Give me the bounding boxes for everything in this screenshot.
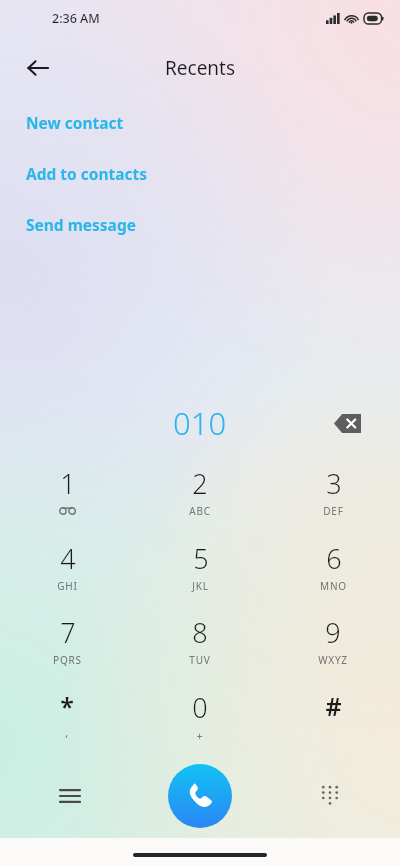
staticText: + [196,728,204,743]
staticText: 6 [326,540,342,577]
staticText: Add to contacts [26,163,148,184]
staticText: MNO [320,579,347,593]
staticText: GHI [57,579,78,593]
staticText: * [60,689,74,723]
staticText: WXYZ [318,653,348,667]
button[interactable]: # [285,689,381,751]
button[interactable]: 0 [152,689,248,751]
staticText: New contact [26,112,124,133]
staticText: 010 [173,402,227,444]
button[interactable]: 8 [152,614,248,676]
staticText: TUV [189,653,211,667]
staticText: , [65,725,69,740]
staticText: DEF [323,504,344,518]
staticText: 1 [60,465,76,502]
button[interactable]: * [19,689,115,751]
button[interactable]: Add to contacts [26,161,148,186]
button[interactable]: New contact [26,110,124,135]
button[interactable]: Send message [26,212,136,237]
staticText: JKL [192,579,209,593]
button[interactable]: 2 [152,465,248,527]
button[interactable]: 5 [152,540,248,602]
staticText: PQRS [53,653,82,667]
button[interactable]: 4 [19,540,115,602]
staticText: 8 [192,614,208,651]
staticText: Recents [165,55,236,81]
staticText: # [325,689,342,723]
button[interactable]: 7 [19,614,115,676]
button[interactable]: Dialpad [306,772,354,820]
staticText: 4 [60,540,76,577]
staticText: 2 [192,465,208,502]
button[interactable]: 9 [285,614,381,676]
staticText: 0 [192,689,208,726]
staticText: 7 [60,614,76,651]
button[interactable]: Call log [46,772,94,820]
staticText: Send message [26,214,136,235]
staticText: 9 [325,614,341,651]
button[interactable]: Call [168,764,232,828]
button[interactable]: 3 [285,465,381,527]
button[interactable]: 6 [285,540,381,602]
staticText: 2:36 AM [52,10,100,27]
button[interactable]: Backspace [324,400,370,446]
staticText: ABC [189,504,211,518]
staticText: 3 [326,465,342,502]
button[interactable]: 1 [19,465,115,527]
button[interactable]: Back [14,44,62,92]
staticText: 5 [193,540,209,577]
